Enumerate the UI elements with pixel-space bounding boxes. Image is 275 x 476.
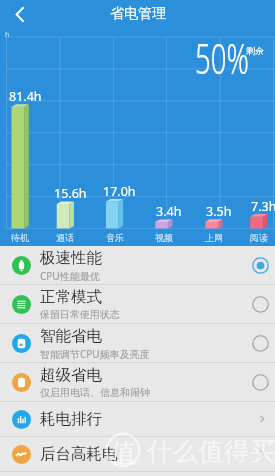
staticText: 阅读 bbox=[250, 232, 268, 243]
staticText: 上网 bbox=[205, 232, 223, 243]
staticText: 81.4h bbox=[9, 88, 42, 105]
button[interactable]: 耗电排行 bbox=[0, 402, 275, 436]
staticText: 3.5h bbox=[206, 203, 232, 220]
staticText: 17.0h bbox=[103, 183, 136, 200]
staticText: 值 bbox=[110, 437, 136, 470]
button[interactable]: 正常模式 bbox=[0, 285, 275, 323]
staticText: 智能省电 bbox=[40, 326, 102, 346]
staticText: 耗电排行 bbox=[40, 409, 257, 429]
staticText: 什么值得买 bbox=[147, 435, 275, 467]
staticText: 音乐 bbox=[106, 232, 124, 243]
staticText: 仅启用电话、信息和闹钟 bbox=[40, 386, 150, 399]
staticText: 待机 bbox=[11, 232, 29, 243]
staticText: 通话 bbox=[56, 232, 74, 243]
button[interactable]: 智能省电 bbox=[0, 324, 275, 362]
staticText: 极速性能 bbox=[40, 248, 102, 268]
button[interactable]: 后台高耗电 bbox=[0, 437, 275, 471]
staticText: 剩余 bbox=[246, 45, 264, 56]
button[interactable]: 极速性能 bbox=[0, 246, 275, 284]
staticText: CPU性能最优 bbox=[40, 269, 100, 283]
staticText: 50% bbox=[195, 28, 249, 87]
button[interactable]: 超级省电 bbox=[0, 363, 275, 401]
staticText: 超级省电 bbox=[40, 365, 102, 385]
staticText: 后台高耗电 bbox=[40, 444, 257, 464]
staticText: 3.4h bbox=[156, 203, 182, 220]
staticText: h bbox=[5, 30, 10, 40]
button[interactable]: Back bbox=[0, 0, 40, 28]
staticText: 视频 bbox=[155, 232, 173, 243]
staticText: 省电管理 bbox=[110, 5, 166, 23]
staticText: 正常模式 bbox=[40, 287, 102, 307]
staticText: 15.6h bbox=[54, 185, 87, 202]
staticText: 智能调节CPU频率及亮度 bbox=[40, 347, 150, 361]
staticText: 7.3h bbox=[251, 198, 275, 215]
staticText: 保留日常使用状态 bbox=[40, 308, 120, 321]
